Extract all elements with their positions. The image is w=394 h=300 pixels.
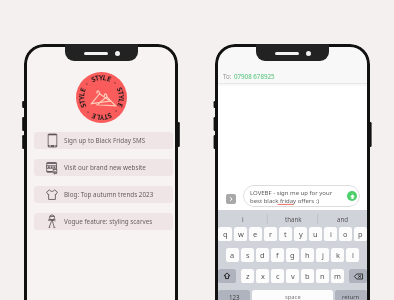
button[interactable]: Vogue feature: styling scarves [34, 213, 173, 230]
button[interactable]: Backspace [349, 269, 367, 283]
staticText: x [261, 271, 265, 281]
button[interactable]: y [294, 227, 307, 241]
staticText: w [238, 229, 244, 239]
button[interactable]: Blog: Top autumn trends 2023 [34, 186, 173, 203]
staticText: best black friday offers :) [250, 197, 320, 205]
staticText: To: [223, 72, 234, 80]
staticText: n [320, 271, 325, 281]
button[interactable]: s [241, 248, 254, 262]
button[interactable]: Show more options [226, 194, 236, 204]
button[interactable]: r [264, 227, 277, 241]
button[interactable]: Sign up to Black Friday SMS [34, 132, 173, 149]
button[interactable]: v [286, 269, 299, 283]
staticText: l [352, 250, 354, 260]
staticText: s [246, 250, 250, 260]
staticText: g [290, 250, 295, 260]
staticText: i [242, 215, 244, 223]
staticText: z [246, 271, 250, 281]
staticText: e [253, 229, 258, 239]
button[interactable]: n [316, 269, 329, 283]
button[interactable]: Shift [218, 269, 236, 283]
button[interactable]: thank [268, 210, 318, 227]
button[interactable]: l [346, 248, 359, 262]
staticText: j [322, 250, 324, 260]
staticText: Visit our brand new website [64, 163, 146, 172]
button[interactable]: Send [347, 191, 357, 201]
staticText: c [276, 271, 280, 281]
staticText: k [336, 250, 340, 260]
button[interactable]: d [256, 248, 269, 262]
button[interactable]: j [316, 248, 329, 262]
staticText: LOVEBF - sign me up for your [250, 189, 333, 197]
button[interactable]: q [218, 227, 232, 241]
button[interactable]: i [217, 210, 268, 227]
staticText: return [342, 293, 360, 300]
staticText: h [305, 250, 310, 260]
button[interactable]: m [331, 269, 344, 283]
button[interactable]: k [331, 248, 344, 262]
button[interactable]: f [271, 248, 284, 262]
button[interactable]: and [318, 210, 368, 227]
button[interactable]: h [301, 248, 314, 262]
staticText: f [276, 250, 279, 260]
button[interactable]: b [301, 269, 314, 283]
button[interactable]: z [241, 269, 254, 283]
button[interactable]: p [354, 227, 367, 241]
button[interactable]: t [279, 227, 292, 241]
staticText: 123 [229, 293, 240, 300]
staticText: v [291, 271, 295, 281]
button[interactable]: x [256, 269, 269, 283]
staticText: i [330, 229, 332, 239]
staticText: Sign up to Black Friday SMS [64, 136, 146, 145]
staticText: q [223, 229, 228, 239]
staticText: m [334, 271, 341, 281]
staticText: y [299, 229, 303, 239]
button[interactable]: space [252, 290, 333, 300]
button[interactable]: c [271, 269, 284, 283]
button[interactable]: e [249, 227, 262, 241]
staticText: Vogue feature: styling scarves [64, 217, 153, 226]
button[interactable]: u [309, 227, 322, 241]
button[interactable]: g [286, 248, 299, 262]
staticText: 07908 678925 [234, 72, 275, 80]
button[interactable]: return [335, 290, 367, 300]
staticText: and [337, 215, 349, 223]
button[interactable]: a [226, 248, 239, 262]
staticText: Blog: Top autumn trends 2023 [64, 190, 154, 199]
staticText: o [343, 229, 348, 239]
button[interactable]: Visit our brand new website [34, 159, 173, 176]
staticText: d [260, 250, 265, 260]
staticText: thank [285, 215, 302, 223]
staticText: u [313, 229, 318, 239]
button[interactable]: 123 [218, 290, 250, 300]
staticText: a [230, 250, 235, 260]
staticText: space [285, 293, 301, 300]
button[interactable]: w [234, 227, 247, 241]
staticText: p [358, 229, 363, 239]
staticText: r [269, 229, 273, 239]
button[interactable]: o [339, 227, 352, 241]
button[interactable]: i [324, 227, 337, 241]
staticText: t [284, 229, 287, 239]
staticText: b [305, 271, 310, 281]
